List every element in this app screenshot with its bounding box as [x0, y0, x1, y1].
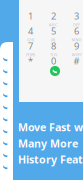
button[interactable]: # [65, 56, 83, 71]
staticText: 7 [28, 40, 33, 52]
staticText: 5 [51, 25, 56, 37]
staticText: MNO [71, 37, 81, 42]
staticText: Move Fast with [18, 120, 83, 134]
staticText: 2 [51, 10, 56, 22]
staticText: 9 [74, 40, 79, 52]
staticText: 1 [28, 10, 33, 22]
button[interactable]: 3 [65, 11, 83, 26]
staticText: # [73, 55, 79, 67]
button[interactable]: 1 [19, 11, 42, 26]
button[interactable]: 9 [65, 41, 83, 56]
staticText: ABC [49, 22, 58, 27]
button[interactable]: 8 [42, 41, 65, 56]
button[interactable]: * [19, 56, 42, 71]
button[interactable]: Call [50, 66, 60, 76]
staticText: 3 [74, 10, 79, 22]
button[interactable]: 7 [19, 41, 42, 56]
button[interactable]: 5 [42, 26, 65, 41]
staticText: 4 [28, 25, 33, 37]
staticText: JKL [51, 37, 56, 42]
staticText: 6 [74, 25, 79, 37]
staticText: * [28, 55, 33, 67]
staticText: History Feature [18, 152, 83, 166]
button[interactable]: 2 [42, 11, 65, 26]
staticText: 0 [51, 55, 56, 67]
staticText: PQRS [26, 52, 35, 57]
button[interactable]: 6 [65, 26, 83, 41]
button[interactable]: 0 [42, 56, 65, 71]
staticText: GHI [27, 37, 34, 42]
staticText: TUV [50, 52, 57, 57]
button[interactable]: 4 [19, 26, 42, 41]
staticText: Many More [18, 136, 78, 150]
staticText: 8 [51, 40, 56, 52]
staticText: DEF [73, 22, 80, 27]
staticText: + [52, 67, 54, 72]
staticText: WXYZ [71, 52, 81, 57]
